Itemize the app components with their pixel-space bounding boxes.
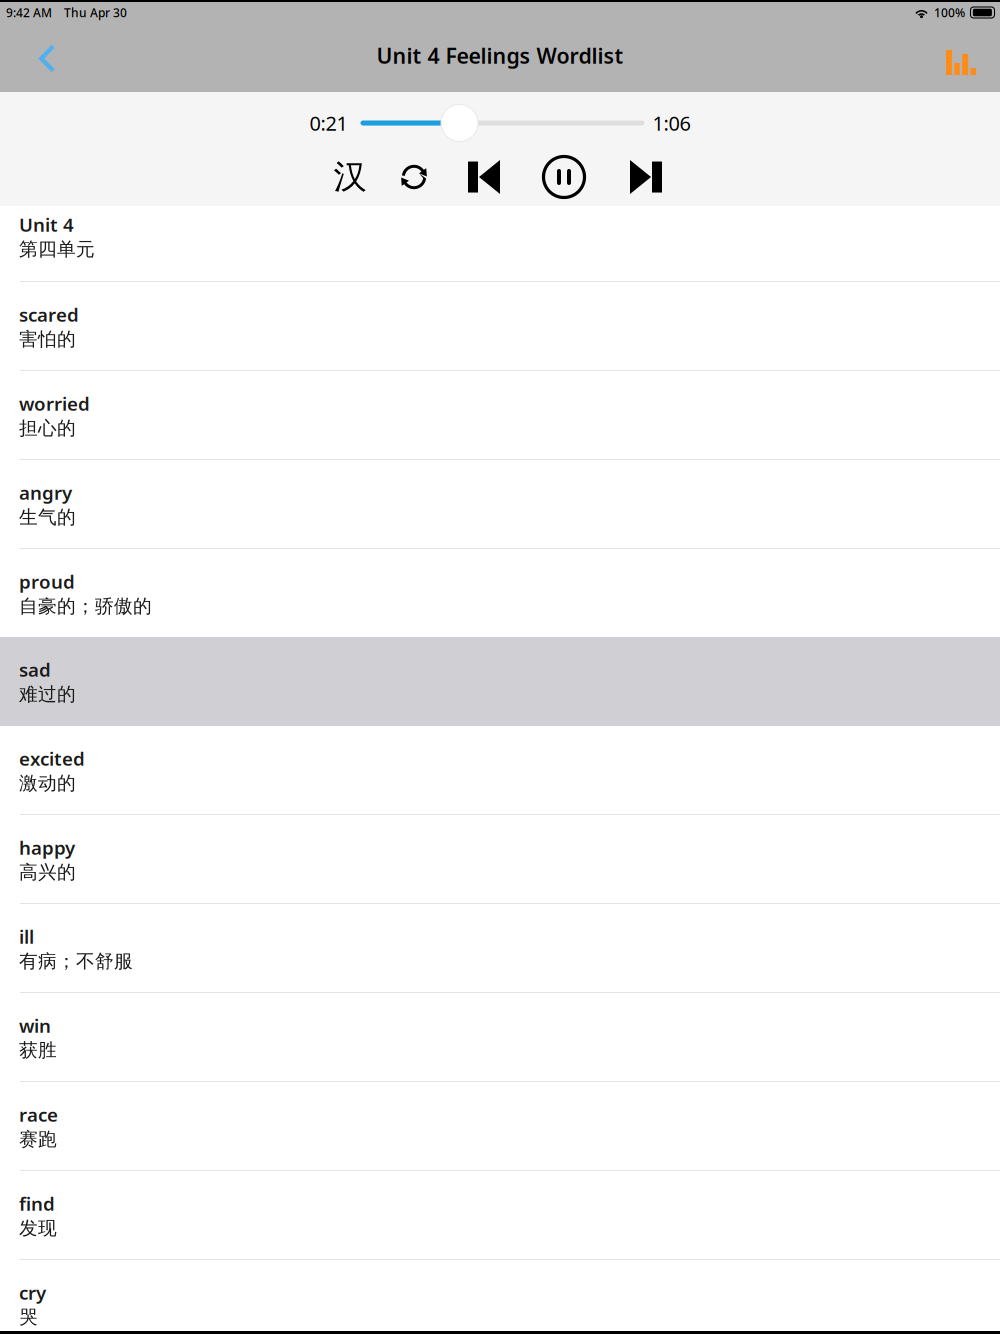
- staticText: 害怕的: [19, 328, 76, 351]
- staticText: find: [19, 1191, 55, 1216]
- staticText: 自豪的；骄傲的: [19, 595, 152, 618]
- button[interactable]: ill: [0, 904, 1000, 993]
- staticText: 100%: [934, 4, 965, 20]
- staticText: 生气的: [19, 506, 76, 529]
- button[interactable]: race: [0, 1082, 1000, 1171]
- staticText: win: [19, 1013, 51, 1038]
- staticText: 高兴的: [19, 861, 76, 884]
- staticText: 0:21: [309, 110, 347, 136]
- button[interactable]: scared: [0, 282, 1000, 371]
- staticText: Unit 4 Feelings Wordlist: [376, 41, 623, 70]
- staticText: ill: [19, 924, 34, 949]
- staticText: worried: [19, 391, 90, 416]
- staticText: 9:42 AM: [6, 4, 52, 20]
- staticText: 哭: [19, 1306, 38, 1329]
- staticText: happy: [19, 835, 75, 860]
- staticText: cry: [19, 1280, 46, 1305]
- staticText: sad: [19, 657, 51, 682]
- button[interactable]: win: [0, 993, 1000, 1082]
- button[interactable]: Repeat: [382, 153, 446, 201]
- staticText: scared: [19, 302, 79, 327]
- button[interactable]: find: [0, 1171, 1000, 1260]
- button[interactable]: 汉: [318, 153, 382, 201]
- staticText: 激动的: [19, 772, 76, 795]
- button[interactable]: Pause: [522, 153, 606, 201]
- staticText: 赛跑: [19, 1128, 57, 1151]
- staticText: excited: [19, 746, 85, 771]
- staticText: 汉: [333, 156, 366, 197]
- button[interactable]: happy: [0, 815, 1000, 904]
- button[interactable]: Statistics: [934, 32, 988, 85]
- button[interactable]: worried: [0, 371, 1000, 460]
- button[interactable]: Back: [25, 30, 69, 87]
- staticText: 担心的: [19, 417, 76, 440]
- button[interactable]: proud: [0, 549, 1000, 637]
- button[interactable]: sad: [0, 637, 1000, 726]
- staticText: 第四单元: [19, 238, 95, 261]
- staticText: race: [19, 1102, 58, 1127]
- staticText: 发现: [19, 1217, 57, 1240]
- button[interactable]: Next track: [606, 153, 686, 201]
- button[interactable]: cry: [0, 1260, 1000, 1334]
- staticText: 获胜: [19, 1039, 57, 1062]
- staticText: 1:06: [652, 110, 690, 136]
- staticText: 难过的: [19, 683, 76, 706]
- staticText: Thu Apr 30: [64, 4, 127, 20]
- button[interactable]: Unit 4: [0, 206, 1000, 282]
- button[interactable]: Previous track: [446, 153, 522, 201]
- button[interactable]: angry: [0, 460, 1000, 549]
- button[interactable]: excited: [0, 726, 1000, 815]
- staticText: 有病；不舒服: [19, 950, 133, 973]
- staticText: Unit 4: [19, 212, 74, 237]
- staticText: angry: [19, 480, 72, 505]
- staticText: proud: [19, 569, 75, 594]
